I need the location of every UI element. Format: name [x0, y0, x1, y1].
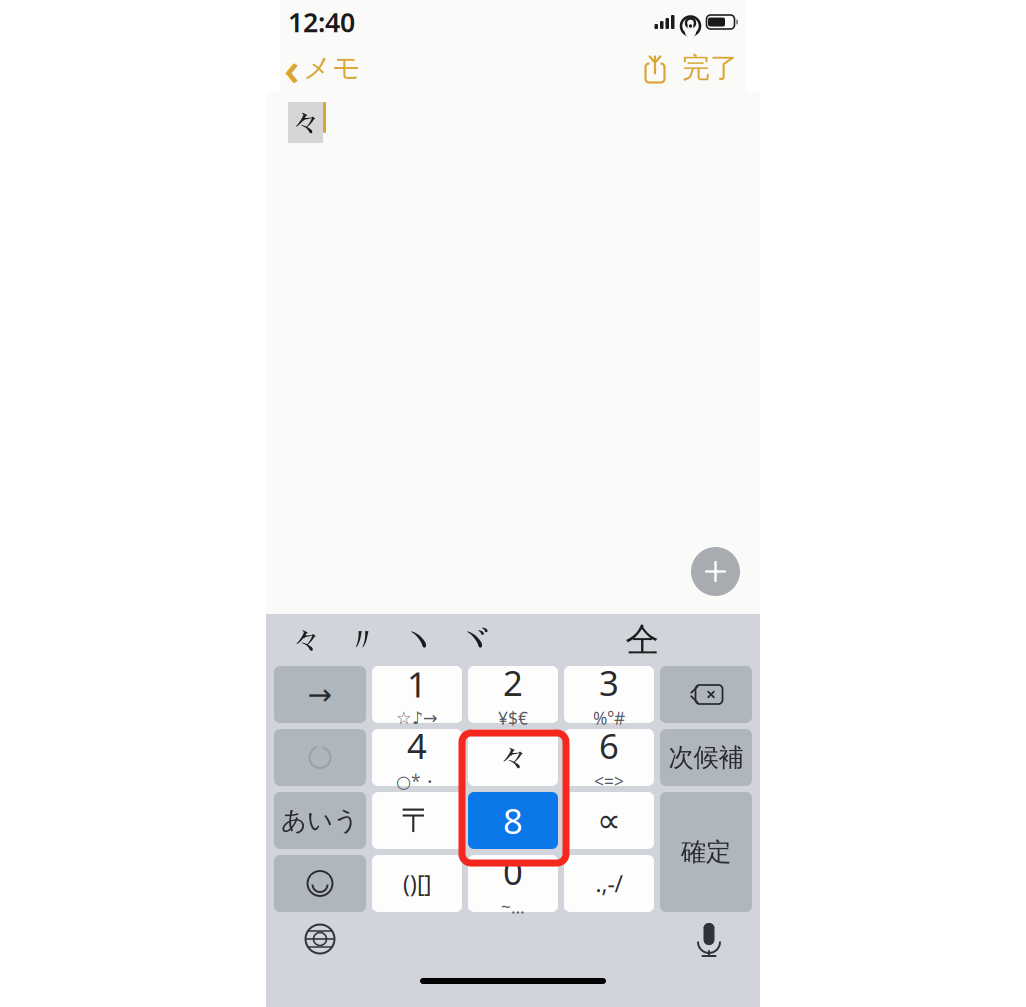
staticText: ○*・ — [396, 769, 438, 793]
button[interactable]: 絵文字 — [274, 855, 366, 912]
staticText: ‹ — [284, 38, 300, 98]
button[interactable]: 削除 — [660, 666, 752, 723]
staticText: メモ — [303, 51, 361, 85]
staticText: 々 — [496, 737, 529, 778]
staticText: → — [307, 678, 332, 711]
button[interactable]: 4 — [372, 729, 462, 786]
button[interactable]: 1 — [372, 666, 462, 723]
staticText: 0 — [503, 848, 523, 894]
button[interactable]: キーボード切り替え — [296, 915, 344, 963]
button[interactable]: 々 — [468, 729, 558, 786]
button[interactable]: 共有 — [636, 53, 674, 83]
button[interactable]: 追加 — [691, 547, 740, 596]
staticText: 〃 — [345, 619, 378, 660]
button[interactable]: 音声入力 — [688, 914, 730, 964]
staticText: ~… — [501, 895, 525, 918]
button[interactable]: ∝ — [564, 792, 654, 849]
button[interactable]: 〃 — [334, 617, 390, 663]
staticText: 々 — [289, 619, 322, 660]
button[interactable]: 々 — [278, 617, 334, 663]
staticText: %°# — [593, 706, 625, 729]
staticText: ヾ — [457, 619, 490, 660]
staticText: 4 — [407, 722, 427, 768]
staticText: 次候補 — [668, 742, 743, 773]
button[interactable]: 取り消す — [274, 729, 366, 786]
button[interactable]: 次候補 — [660, 729, 752, 786]
button[interactable]: ‹ — [280, 34, 365, 102]
staticText: 々 — [289, 102, 322, 143]
button[interactable]: 2 — [468, 666, 558, 723]
button[interactable]: → — [274, 666, 366, 723]
staticText: .,-/ — [595, 868, 622, 898]
button[interactable]: ()[] — [372, 855, 462, 912]
button[interactable]: あいう — [274, 792, 366, 849]
button[interactable]: ヽ — [390, 617, 446, 663]
button[interactable]: 6 — [564, 729, 654, 786]
staticText: 3 — [599, 659, 619, 705]
staticText: 12:40 — [288, 4, 355, 40]
staticText: ∝ — [597, 802, 621, 839]
button[interactable]: 完了 — [674, 47, 746, 89]
staticText: ¥$€ — [498, 706, 528, 729]
staticText: 仝 — [625, 619, 658, 660]
staticText: 6 — [599, 722, 619, 768]
button[interactable]: ヾ — [446, 617, 502, 663]
button[interactable]: 0 — [468, 855, 558, 912]
button[interactable]: 確定 — [660, 792, 752, 912]
button[interactable]: 3 — [564, 666, 654, 723]
button[interactable]: 〒 — [372, 792, 462, 849]
staticText: 2 — [503, 659, 523, 705]
staticText: 〒 — [400, 800, 433, 841]
staticText: 完了 — [682, 51, 738, 85]
staticText: あいう — [281, 805, 359, 836]
staticText: 1 — [407, 661, 427, 707]
button[interactable]: 仝 — [614, 617, 670, 663]
button[interactable]: 8 — [468, 792, 558, 849]
staticText: 確定 — [681, 836, 731, 867]
staticText: ()[] — [403, 868, 431, 898]
staticText: ☆♪→ — [396, 708, 438, 728]
button[interactable]: .,-/ — [564, 855, 654, 912]
staticText: ヽ — [401, 619, 434, 660]
staticText: 8 — [503, 797, 523, 843]
staticText: <=> — [594, 769, 624, 792]
